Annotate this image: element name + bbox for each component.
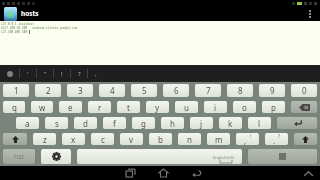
staticText: 2 <box>46 85 51 96</box>
button[interactable]: Emoji <box>248 149 317 164</box>
button[interactable]: z <box>33 133 56 145</box>
staticText: 4 <box>110 85 115 96</box>
staticText: j <box>200 118 203 129</box>
staticText: ! <box>250 133 252 140</box>
button[interactable]: ? <box>71 65 87 82</box>
staticText: 127.100.100.100 <box>1 30 29 34</box>
button[interactable]: Voice input <box>0 65 19 82</box>
staticText: 0 <box>302 85 307 96</box>
button[interactable]: m <box>207 133 230 145</box>
button[interactable]: n <box>178 133 201 145</box>
button[interactable]: More options <box>299 6 320 21</box>
button[interactable]: 7 <box>195 84 221 97</box>
button[interactable]: 6 <box>163 84 189 97</box>
staticText: 1 <box>14 85 19 96</box>
staticText: n <box>187 134 192 145</box>
staticText: e <box>68 102 73 113</box>
button[interactable]: ? <box>265 133 288 145</box>
staticText: r <box>98 102 102 113</box>
button[interactable]: d <box>74 117 97 129</box>
button[interactable]: c <box>91 133 114 145</box>
button[interactable]: y <box>146 101 169 113</box>
staticText: ?123 <box>14 154 24 160</box>
staticText: v <box>129 134 134 145</box>
button[interactable]: i <box>204 101 227 113</box>
staticText: 127.0.0.1 localhost <box>1 22 34 26</box>
staticText: k <box>228 118 233 129</box>
button[interactable]: u <box>175 101 198 113</box>
button[interactable]: 4 <box>99 84 125 97</box>
button[interactable]: t <box>117 101 140 113</box>
staticText: z <box>43 134 47 145</box>
button[interactable]: ! <box>54 65 70 82</box>
button[interactable]: Enter <box>277 117 317 129</box>
button[interactable]: 1 <box>3 84 29 97</box>
staticText: . <box>273 135 276 145</box>
button[interactable]: Symbols <box>3 149 35 164</box>
staticText: h <box>170 118 175 129</box>
staticText: 7 <box>206 85 211 96</box>
button[interactable]: " <box>37 65 53 82</box>
button[interactable]: Shift <box>294 133 317 145</box>
staticText: a <box>25 118 30 129</box>
staticText: #127.100.10.100 android-clients.google.c… <box>1 26 78 30</box>
button[interactable]: v <box>120 133 143 145</box>
button[interactable]: r <box>88 101 111 113</box>
staticText: p <box>271 102 276 113</box>
button[interactable]: l <box>248 117 271 129</box>
button[interactable]: j <box>190 117 213 129</box>
button[interactable]: Shift <box>3 133 27 145</box>
staticText: g <box>141 118 146 129</box>
button[interactable]: q <box>3 101 25 113</box>
button[interactable]: ! <box>236 133 259 145</box>
staticText: o <box>242 102 247 113</box>
button[interactable]: 8 <box>227 84 253 97</box>
staticText: English(US) <box>213 155 235 160</box>
staticText: m <box>215 134 223 145</box>
button[interactable]: , <box>88 65 104 82</box>
button[interactable]: e <box>59 101 82 113</box>
button[interactable]: x <box>62 133 85 145</box>
button[interactable]: h <box>161 117 184 129</box>
staticText: t <box>127 102 130 113</box>
staticText: ' <box>27 70 29 78</box>
button[interactable]: Space <box>77 149 242 164</box>
staticText: x <box>71 134 76 145</box>
button[interactable]: Home <box>155 166 171 180</box>
staticText: i <box>214 102 217 113</box>
button[interactable]: 2 <box>35 84 61 97</box>
button[interactable]: Backspace <box>291 101 317 113</box>
staticText: " <box>44 70 47 78</box>
staticText: , <box>95 70 97 78</box>
staticText: y <box>155 102 160 113</box>
staticText: ! <box>61 70 63 78</box>
button[interactable]: ' <box>20 65 36 82</box>
button[interactable]: Settings <box>41 149 71 164</box>
staticText: w <box>39 102 46 113</box>
button[interactable]: a <box>16 117 39 129</box>
button[interactable]: 3 <box>67 84 93 97</box>
staticText: l <box>258 118 261 129</box>
button[interactable]: Back <box>188 166 204 180</box>
staticText: s <box>55 118 59 129</box>
button[interactable]: b <box>149 133 172 145</box>
button[interactable]: o <box>233 101 256 113</box>
button[interactable]: k <box>219 117 242 129</box>
staticText: q <box>12 102 17 113</box>
staticText: u <box>184 102 189 113</box>
staticText: d <box>83 118 88 129</box>
button[interactable]: 0 <box>291 84 317 97</box>
staticText: b <box>158 134 163 145</box>
staticText: f <box>113 118 116 129</box>
staticText: hosts <box>21 9 39 18</box>
button[interactable]: Hide keyboard <box>300 166 316 180</box>
button[interactable]: s <box>45 117 68 129</box>
button[interactable]: f <box>103 117 126 129</box>
button[interactable]: Recents <box>122 166 138 180</box>
button[interactable]: w <box>31 101 53 113</box>
staticText: 9 <box>270 85 275 96</box>
button[interactable]: 5 <box>131 84 157 97</box>
button[interactable]: p <box>262 101 285 113</box>
button[interactable]: 9 <box>259 84 285 97</box>
button[interactable]: g <box>132 117 155 129</box>
